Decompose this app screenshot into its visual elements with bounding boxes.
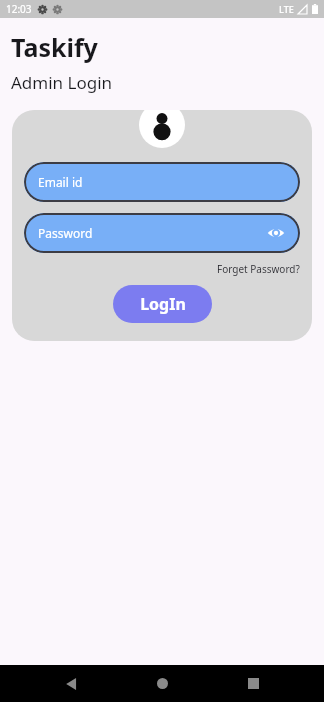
button[interactable]: Back bbox=[51, 665, 91, 702]
button[interactable]: Forget Password? bbox=[217, 262, 300, 276]
button[interactable]: Email id bbox=[24, 162, 300, 202]
staticText: Email id bbox=[38, 174, 83, 190]
staticText: LogIn bbox=[140, 293, 186, 315]
staticText: 12:03 bbox=[6, 2, 32, 16]
button[interactable]: Show password bbox=[266, 223, 286, 243]
staticText: LTE bbox=[279, 3, 294, 15]
button[interactable]: LogIn bbox=[113, 285, 212, 323]
button[interactable]: Home bbox=[142, 665, 182, 702]
staticText: Taskify bbox=[11, 30, 98, 64]
button[interactable]: Recent apps bbox=[233, 665, 273, 702]
button[interactable]: Password bbox=[24, 213, 300, 253]
other: Profile avatar bbox=[139, 110, 185, 148]
staticText: Admin Login bbox=[11, 71, 113, 94]
staticText: Password bbox=[38, 225, 93, 241]
